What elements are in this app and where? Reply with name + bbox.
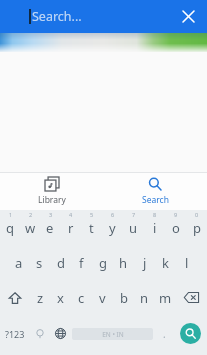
button[interactable]: h: [113, 245, 134, 280]
button[interactable]: Search...: [32, 0, 172, 33]
staticText: h: [119, 254, 128, 272]
button[interactable]: d: [50, 245, 71, 280]
staticText: Search: [142, 194, 169, 206]
button[interactable]: i: [144, 210, 165, 245]
staticText: p: [193, 219, 201, 237]
staticText: 8: [153, 211, 157, 218]
button[interactable]: r: [60, 210, 81, 245]
button[interactable]: s: [29, 245, 50, 280]
staticText: d: [57, 254, 65, 272]
staticText: .: [163, 327, 166, 341]
staticText: f: [79, 254, 84, 272]
staticText: l: [185, 254, 189, 272]
staticText: v: [99, 289, 106, 307]
staticText: r: [68, 219, 74, 237]
button[interactable]: Backspace: [176, 280, 207, 315]
button[interactable]: m: [155, 280, 176, 315]
button[interactable]: z: [30, 280, 50, 315]
button[interactable]: e: [40, 210, 60, 245]
staticText: m: [159, 289, 172, 307]
button[interactable]: u: [123, 210, 144, 245]
staticText: k: [162, 254, 169, 272]
staticText: Search...: [32, 8, 82, 25]
button[interactable]: k: [155, 245, 176, 280]
staticText: 9: [174, 211, 178, 218]
staticText: 7: [132, 211, 136, 218]
staticText: b: [120, 289, 128, 307]
staticText: x: [57, 289, 64, 307]
staticText: 0: [195, 211, 199, 218]
button[interactable]: EN • IN: [72, 328, 153, 340]
staticText: a: [15, 254, 23, 272]
staticText: w: [25, 219, 36, 237]
button[interactable]: b: [113, 280, 134, 315]
button[interactable]: p: [186, 210, 207, 245]
button[interactable]: q: [0, 210, 20, 245]
staticText: z: [37, 289, 44, 307]
button[interactable]: x: [50, 280, 71, 315]
staticText: 2: [29, 211, 33, 218]
button[interactable]: o: [165, 210, 186, 245]
button[interactable]: n: [134, 280, 155, 315]
button[interactable]: ?123: [0, 315, 30, 352]
button[interactable]: Search: [103, 173, 207, 210]
button[interactable]: f: [71, 245, 92, 280]
button[interactable]: a: [9, 245, 29, 280]
staticText: 4: [69, 211, 73, 218]
staticText: ?123: [5, 328, 25, 340]
button[interactable]: Emoji: [30, 315, 50, 352]
button[interactable]: Shift: [0, 280, 30, 315]
button[interactable]: y: [102, 210, 123, 245]
staticText: j: [143, 254, 147, 272]
button[interactable]: t: [81, 210, 102, 245]
staticText: g: [99, 254, 107, 272]
button[interactable]: j: [134, 245, 155, 280]
staticText: EN • IN: [102, 330, 124, 339]
button[interactable]: v: [92, 280, 113, 315]
staticText: 5: [90, 211, 94, 218]
button[interactable]: g: [92, 245, 113, 280]
staticText: e: [46, 219, 54, 237]
staticText: s: [36, 254, 43, 272]
button[interactable]: Search: [174, 315, 207, 352]
staticText: u: [129, 219, 138, 237]
staticText: Library: [38, 194, 66, 206]
staticText: t: [89, 219, 94, 237]
staticText: 3: [49, 211, 53, 218]
staticText: o: [172, 219, 180, 237]
button[interactable]: w: [20, 210, 40, 245]
button[interactable]: Change language: [50, 315, 70, 352]
staticText: i: [153, 219, 157, 237]
staticText: 1: [9, 211, 13, 218]
staticText: 6: [111, 211, 115, 218]
staticText: c: [78, 289, 85, 307]
button[interactable]: Close search: [172, 0, 205, 33]
button[interactable]: Library: [0, 173, 103, 210]
button[interactable]: l: [176, 245, 197, 280]
button[interactable]: c: [71, 280, 92, 315]
staticText: q: [6, 219, 14, 237]
staticText: n: [140, 289, 149, 307]
staticText: y: [109, 219, 116, 237]
